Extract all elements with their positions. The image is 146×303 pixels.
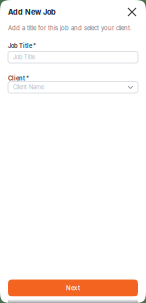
staticText: Job Title * <box>8 42 36 49</box>
button[interactable]: Next <box>8 279 138 296</box>
staticText: Add a title for this job and select your… <box>8 24 132 32</box>
staticText: Job Title <box>13 54 35 61</box>
button[interactable]: Close <box>126 6 138 18</box>
staticText: Next <box>66 284 80 292</box>
staticText: Add New Job <box>8 8 56 16</box>
staticText: Client * <box>8 75 29 82</box>
staticText: Client Name <box>13 84 44 91</box>
